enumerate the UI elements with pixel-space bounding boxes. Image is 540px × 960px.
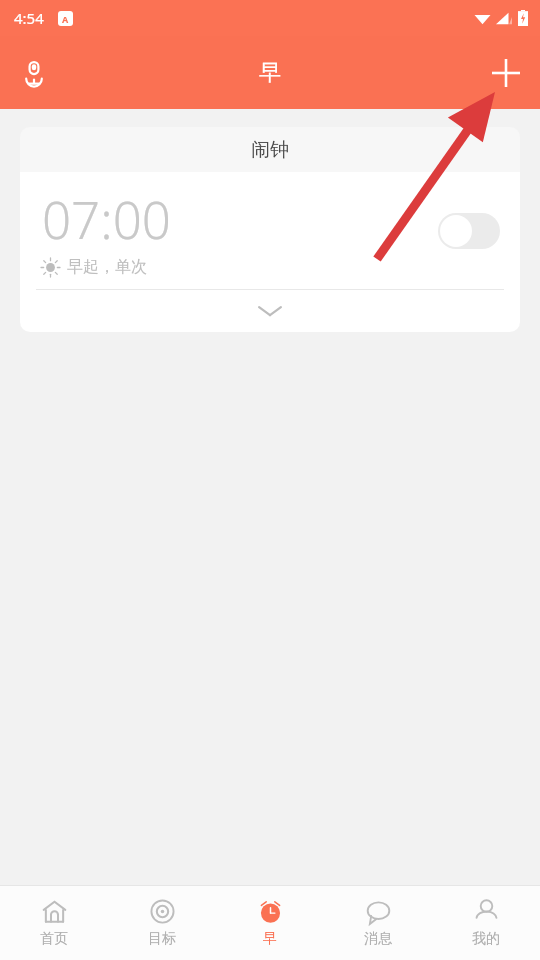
staticText: 早 [263, 930, 277, 948]
staticText: 4:54 [14, 8, 44, 28]
button[interactable]: 消息 [324, 886, 432, 960]
button[interactable]: Add alarm [480, 47, 532, 99]
button[interactable]: 目标 [108, 886, 216, 960]
staticText: 目标 [148, 930, 176, 948]
staticText: 早 [259, 59, 281, 87]
button[interactable]: 早 [216, 886, 324, 960]
staticText: 首页 [40, 930, 68, 948]
staticText: 我的 [472, 930, 500, 948]
button[interactable]: Alarm toggle, off [438, 213, 500, 249]
staticText: 闹钟 [251, 138, 289, 162]
button[interactable]: Voice input [10, 49, 58, 97]
button[interactable]: Expand [20, 290, 520, 332]
staticText: 07:00 [42, 184, 171, 253]
staticText: 消息 [364, 930, 392, 948]
staticText: A [62, 13, 69, 25]
button[interactable]: 07:00 [20, 172, 520, 289]
staticText: 早起，单次 [67, 257, 147, 277]
button[interactable]: 首页 [0, 886, 108, 960]
button[interactable]: 我的 [432, 886, 540, 960]
